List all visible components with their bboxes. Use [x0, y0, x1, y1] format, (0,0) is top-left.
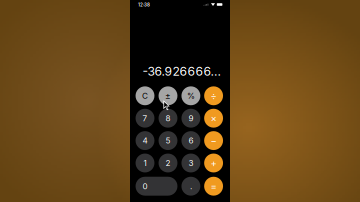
staticText: .: [190, 181, 192, 191]
staticText: 9: [188, 113, 193, 123]
button[interactable]: 4: [136, 131, 154, 150]
staticText: %: [187, 91, 195, 101]
staticText: +: [211, 157, 217, 169]
button[interactable]: +: [204, 154, 223, 172]
button[interactable]: 9: [181, 109, 200, 128]
staticText: 2: [165, 158, 170, 168]
staticText: 0: [143, 181, 148, 191]
staticText: −: [211, 135, 217, 146]
button[interactable]: −: [204, 131, 223, 150]
button[interactable]: ±: [159, 86, 177, 105]
button[interactable]: ÷: [204, 86, 223, 105]
staticText: 1: [143, 158, 146, 168]
button[interactable]: .: [181, 177, 200, 196]
button[interactable]: %: [181, 86, 200, 105]
staticText: 4: [142, 136, 147, 145]
button[interactable]: 2: [159, 154, 177, 172]
button[interactable]: 3: [181, 154, 200, 172]
staticText: ±: [165, 91, 171, 101]
button[interactable]: 7: [136, 109, 154, 128]
staticText: 7: [142, 113, 147, 123]
button[interactable]: ×: [204, 109, 223, 128]
staticText: ÷: [211, 90, 217, 102]
staticText: 6: [188, 136, 193, 145]
staticText: 5: [165, 136, 170, 145]
button[interactable]: 5: [159, 131, 177, 150]
button[interactable]: =: [204, 177, 223, 196]
button[interactable]: 8: [159, 109, 177, 128]
staticText: 3: [188, 158, 193, 168]
staticText: 12:38: [138, 2, 150, 8]
staticText: ×: [211, 112, 217, 124]
button[interactable]: 6: [181, 131, 200, 150]
staticText: C: [142, 91, 148, 101]
button[interactable]: 1: [136, 154, 154, 172]
staticText: =: [211, 180, 217, 192]
staticText: 8: [165, 113, 170, 123]
staticText: -36.926666…: [142, 64, 220, 79]
button[interactable]: C: [136, 86, 154, 105]
button[interactable]: 0: [136, 177, 177, 196]
